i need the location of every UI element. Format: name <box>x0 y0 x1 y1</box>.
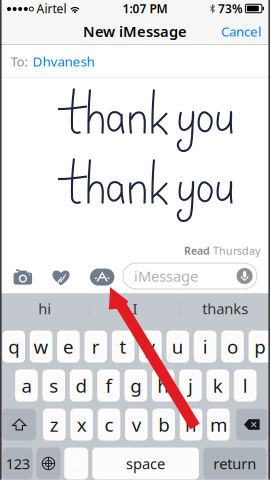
staticText: j <box>188 373 193 398</box>
button[interactable]: u <box>166 330 189 362</box>
button[interactable]: x <box>70 408 93 440</box>
button[interactable]: Dictation <box>64 447 88 479</box>
button[interactable]: iMessage <box>123 263 257 289</box>
button[interactable]: k <box>207 369 229 401</box>
button[interactable]: s <box>42 369 65 401</box>
staticText: q <box>8 334 19 359</box>
staticText: return <box>213 454 256 473</box>
button[interactable]: hi <box>0 293 90 323</box>
staticText: f <box>105 373 111 398</box>
staticText: n <box>185 412 197 437</box>
button[interactable]: d <box>70 369 92 401</box>
button[interactable]: n <box>180 408 202 440</box>
button[interactable]: f <box>97 369 120 401</box>
button[interactable]: e <box>57 330 80 362</box>
button[interactable]: h <box>152 369 174 401</box>
button[interactable]: b <box>152 408 175 440</box>
staticText: g <box>130 373 141 398</box>
staticText: hi <box>38 299 51 318</box>
staticText: Cancel <box>221 22 261 40</box>
button[interactable]: Delete <box>236 408 267 440</box>
staticText: New iMessage <box>83 21 187 41</box>
button[interactable]: t <box>112 330 134 362</box>
button[interactable]: q <box>2 330 25 362</box>
button[interactable]: w <box>30 330 52 362</box>
staticText: 1:07 PM <box>122 0 167 16</box>
staticText: z <box>50 412 59 437</box>
staticText: h <box>157 373 169 398</box>
button[interactable]: l <box>234 369 256 401</box>
button[interactable]: Camera <box>10 265 37 289</box>
button[interactable]: iMessage Apps <box>87 265 117 289</box>
button[interactable]: c <box>98 408 120 440</box>
staticText: I <box>132 299 137 318</box>
button[interactable]: Digital Touch <box>48 264 74 289</box>
staticText: r <box>92 334 100 359</box>
button[interactable]: j <box>179 369 202 401</box>
button[interactable]: m <box>207 408 230 440</box>
button[interactable]: p <box>249 330 270 362</box>
staticText: t <box>120 334 127 359</box>
button[interactable]: a <box>15 369 38 401</box>
staticText: space <box>126 454 165 473</box>
staticText: Dhvanesh <box>32 52 94 70</box>
button[interactable]: To: <box>0 45 270 77</box>
staticText: x <box>77 412 87 437</box>
staticText: 123 <box>6 454 30 473</box>
button[interactable]: 123 <box>3 447 33 479</box>
button[interactable]: Cancel <box>212 17 270 45</box>
button[interactable]: Shift <box>2 408 36 440</box>
button[interactable]: return <box>203 447 266 479</box>
staticText: s <box>49 373 58 398</box>
staticText: k <box>213 373 223 398</box>
button[interactable]: g <box>124 369 147 401</box>
staticText: b <box>158 412 169 437</box>
button[interactable]: thanks <box>180 293 270 323</box>
button[interactable]: r <box>84 330 107 362</box>
button[interactable]: y <box>139 330 162 362</box>
staticText: d <box>76 373 87 398</box>
staticText: u <box>172 334 184 359</box>
staticText: Airtel <box>36 0 66 16</box>
staticText: Read <box>184 243 210 258</box>
staticText: e <box>63 334 74 359</box>
button[interactable]: v <box>125 408 148 440</box>
staticText: v <box>132 412 141 437</box>
staticText: c <box>104 412 113 437</box>
button[interactable]: i <box>194 330 216 362</box>
staticText: m <box>210 412 227 437</box>
staticText: a <box>21 373 31 398</box>
staticText: i <box>203 334 208 359</box>
staticText: Thursday <box>213 243 260 258</box>
staticText: o <box>227 334 238 359</box>
staticText: iMessage <box>134 266 198 286</box>
button[interactable]: space <box>92 447 199 479</box>
button[interactable]: o <box>221 330 244 362</box>
staticText: To: <box>10 52 28 70</box>
button[interactable]: I <box>90 293 180 323</box>
button[interactable]: Next keyboard <box>36 447 61 479</box>
staticText: 73% <box>218 0 243 16</box>
staticText: w <box>33 334 48 359</box>
staticText: y <box>145 334 155 359</box>
button[interactable]: z <box>43 408 66 440</box>
staticText: thanks <box>202 299 248 318</box>
staticText: l <box>243 373 248 398</box>
staticText: p <box>254 334 265 359</box>
